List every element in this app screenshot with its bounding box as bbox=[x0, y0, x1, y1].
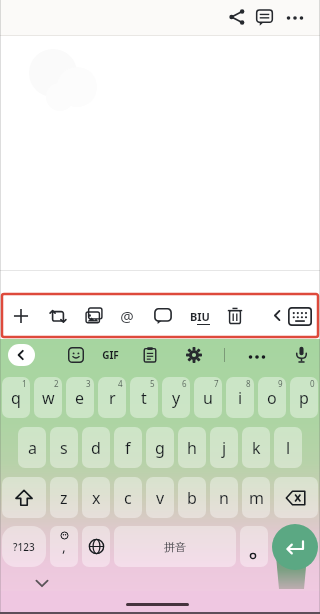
staticText: r bbox=[109, 387, 116, 409]
button[interactable] bbox=[186, 347, 202, 363]
button[interactable] bbox=[226, 307, 244, 325]
staticText: 7 bbox=[214, 378, 219, 389]
staticText: o bbox=[267, 387, 277, 409]
staticText: i bbox=[238, 387, 243, 409]
staticText: 8 bbox=[246, 378, 251, 389]
button[interactable] bbox=[271, 309, 284, 322]
staticText: 拼音 bbox=[164, 540, 186, 554]
button[interactable]: o bbox=[258, 377, 286, 418]
button[interactable]: h bbox=[178, 427, 206, 468]
button[interactable] bbox=[229, 9, 245, 25]
button[interactable] bbox=[248, 348, 266, 366]
button[interactable] bbox=[34, 575, 50, 591]
staticText: 2 bbox=[54, 378, 59, 389]
button[interactable]: u bbox=[194, 377, 222, 418]
staticText: p bbox=[299, 387, 309, 409]
button[interactable]: , bbox=[50, 526, 78, 567]
button[interactable] bbox=[2, 477, 46, 518]
button[interactable] bbox=[274, 477, 318, 518]
button[interactable]: z bbox=[50, 477, 78, 518]
button[interactable] bbox=[142, 347, 158, 363]
staticText: @ bbox=[120, 306, 134, 326]
button[interactable]: r bbox=[98, 377, 126, 418]
button[interactable]: s bbox=[50, 427, 78, 468]
button[interactable] bbox=[8, 344, 35, 366]
button[interactable] bbox=[13, 308, 29, 324]
button[interactable]: n bbox=[210, 477, 238, 518]
staticText: z bbox=[60, 487, 68, 509]
staticText: 9 bbox=[278, 378, 283, 389]
staticText: , bbox=[62, 537, 66, 556]
button[interactable]: b bbox=[178, 477, 206, 518]
staticText: n bbox=[219, 487, 229, 509]
staticText: l bbox=[286, 437, 291, 459]
staticText: GIF bbox=[102, 348, 119, 362]
staticText: 4 bbox=[118, 378, 123, 389]
button[interactable] bbox=[240, 526, 268, 567]
button[interactable]: w bbox=[34, 377, 62, 418]
button[interactable]: c bbox=[114, 477, 142, 518]
staticText: 0 bbox=[310, 378, 315, 389]
button[interactable]: p bbox=[290, 377, 318, 418]
staticText: t bbox=[141, 387, 147, 409]
staticText: g bbox=[155, 437, 165, 459]
button[interactable] bbox=[272, 524, 318, 570]
button[interactable]: l bbox=[274, 427, 302, 468]
button[interactable] bbox=[154, 307, 172, 325]
staticText: b bbox=[187, 487, 197, 509]
button[interactable]: 拼音 bbox=[114, 526, 236, 567]
staticText: BIU bbox=[190, 309, 210, 324]
staticText: d bbox=[91, 437, 101, 459]
button[interactable]: y bbox=[162, 377, 190, 418]
staticText: m bbox=[249, 487, 264, 509]
staticText: u bbox=[203, 387, 213, 409]
staticText: ?123 bbox=[13, 540, 35, 554]
staticText: h bbox=[187, 437, 197, 459]
button[interactable]: t bbox=[130, 377, 158, 418]
button[interactable]: d bbox=[82, 427, 110, 468]
staticText: s bbox=[60, 437, 68, 459]
button[interactable] bbox=[85, 307, 103, 325]
button[interactable] bbox=[288, 307, 312, 326]
button[interactable] bbox=[286, 9, 304, 27]
staticText: w bbox=[42, 387, 55, 409]
staticText: 6 bbox=[182, 378, 187, 389]
button[interactable]: k bbox=[242, 427, 270, 468]
button[interactable]: i bbox=[226, 377, 254, 418]
staticText: x bbox=[92, 487, 101, 509]
button[interactable]: g bbox=[146, 427, 174, 468]
staticText: a bbox=[28, 437, 37, 459]
staticText: e bbox=[75, 387, 85, 409]
staticText: k bbox=[252, 437, 261, 459]
button[interactable]: f bbox=[114, 427, 142, 468]
staticText: c bbox=[124, 487, 132, 509]
button[interactable]: a bbox=[18, 427, 46, 468]
button[interactable] bbox=[68, 347, 84, 363]
button[interactable] bbox=[49, 307, 67, 325]
staticText: 3 bbox=[86, 378, 91, 389]
button[interactable]: BIU bbox=[185, 303, 215, 329]
staticText: q bbox=[11, 387, 21, 409]
staticText: 5 bbox=[150, 378, 155, 389]
button[interactable] bbox=[82, 526, 110, 567]
button[interactable]: x bbox=[82, 477, 110, 518]
staticText: j bbox=[222, 437, 227, 459]
button[interactable]: v bbox=[146, 477, 174, 518]
button[interactable]: q bbox=[2, 377, 30, 418]
staticText: v bbox=[156, 487, 165, 509]
staticText: f bbox=[125, 437, 131, 459]
button[interactable]: j bbox=[210, 427, 238, 468]
staticText: 1 bbox=[22, 378, 27, 389]
button[interactable]: m bbox=[242, 477, 270, 518]
button[interactable] bbox=[256, 9, 273, 26]
button[interactable]: e bbox=[66, 377, 94, 418]
staticText: y bbox=[172, 387, 181, 409]
button[interactable]: ?123 bbox=[2, 526, 46, 567]
button[interactable] bbox=[15, 349, 27, 361]
button[interactable] bbox=[293, 346, 310, 363]
